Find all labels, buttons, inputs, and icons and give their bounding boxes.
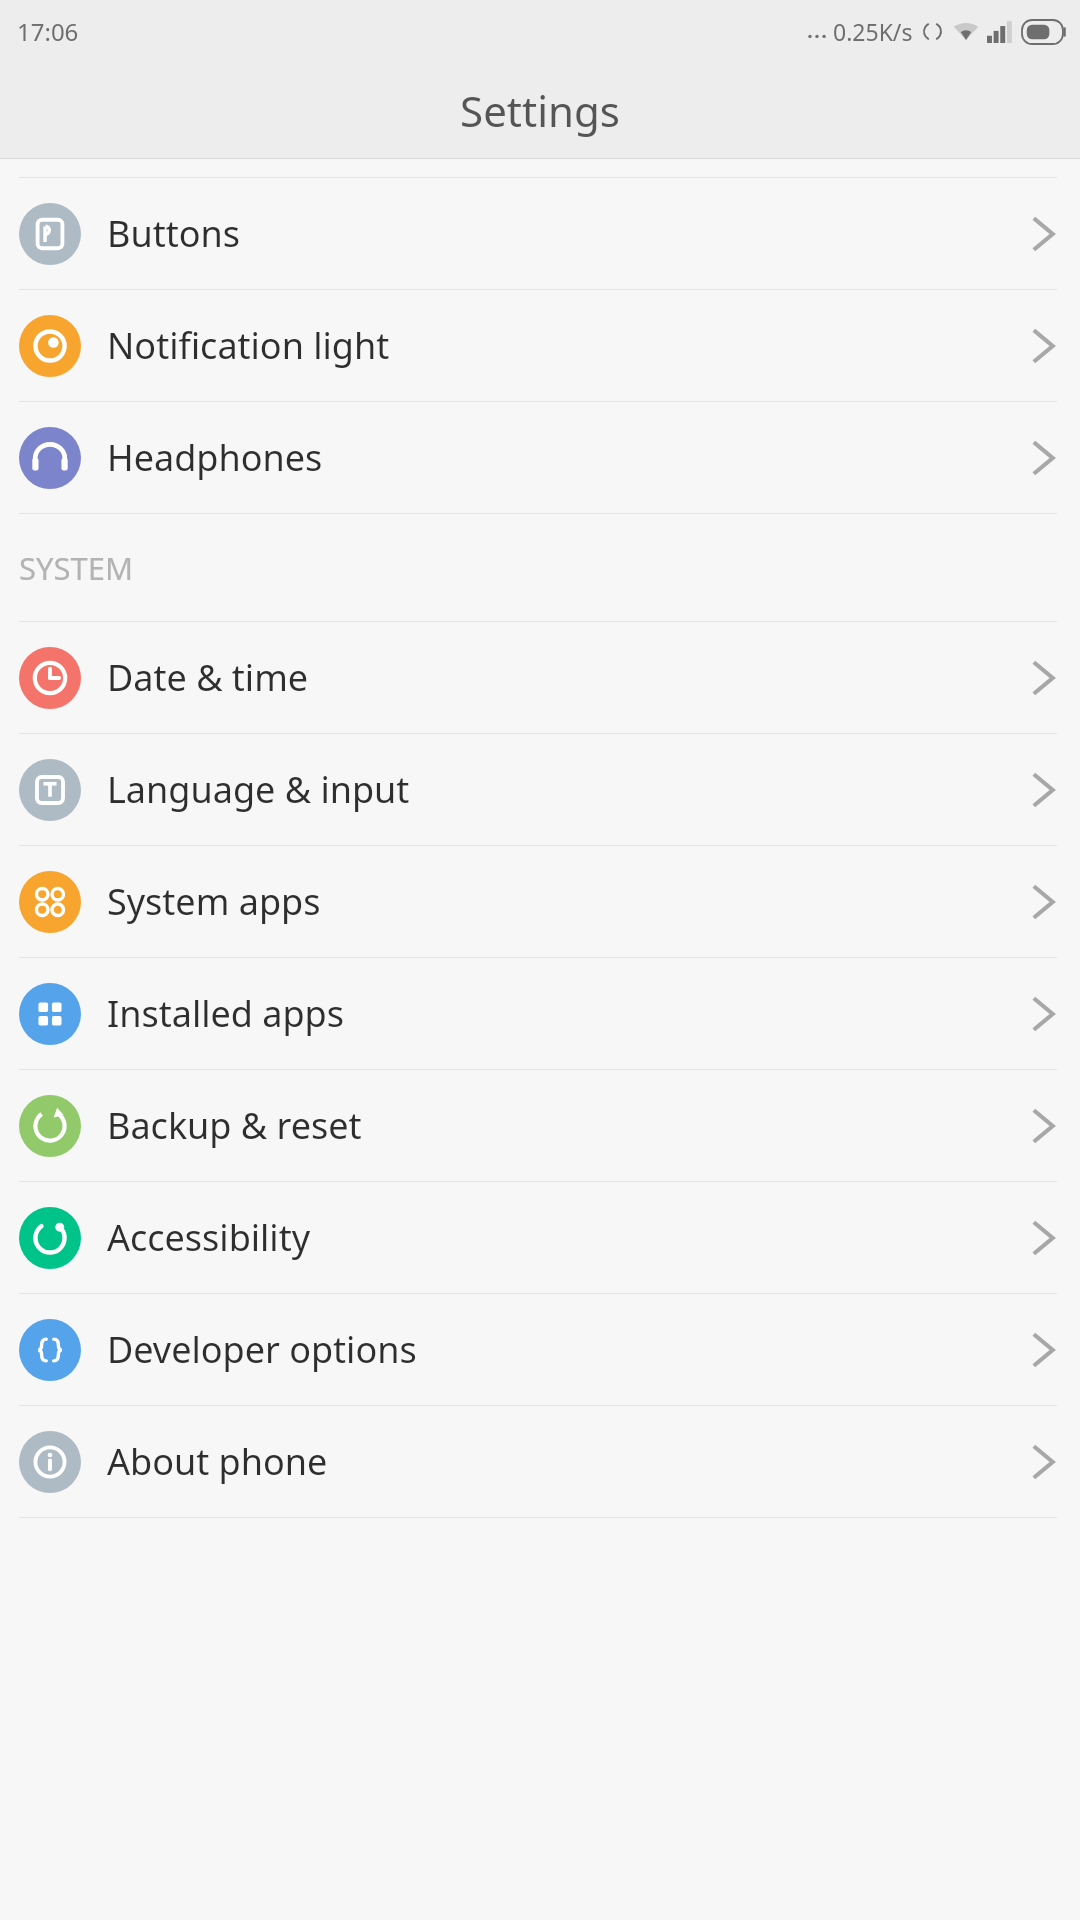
staticText: Headphones [107,433,323,482]
staticText: About phone [107,1437,328,1486]
staticText: System apps [107,877,321,926]
staticText: 0.25K/s [833,16,913,47]
staticText: 17:06 [17,15,79,48]
button[interactable]: Notification light [0,290,1080,401]
staticText: Date & time [107,653,309,702]
staticText: SYSTEM [19,547,134,589]
button[interactable]: Accessibility [0,1182,1080,1293]
button[interactable]: Date & time [0,622,1080,733]
staticText: Backup & reset [107,1101,362,1150]
staticText: Installed apps [107,989,344,1038]
button[interactable]: Buttons [0,178,1080,289]
staticText: Notification light [107,321,390,370]
button[interactable]: Installed apps [0,958,1080,1069]
button[interactable]: Backup & reset [0,1070,1080,1181]
button[interactable]: Language & input [0,734,1080,845]
button[interactable]: About phone [0,1406,1080,1517]
button[interactable]: Headphones [0,402,1080,513]
staticText: Language & input [107,765,410,814]
staticText: Settings [460,82,620,139]
button[interactable]: System apps [0,846,1080,957]
button[interactable]: Developer options [0,1294,1080,1405]
staticText: Accessibility [107,1213,311,1262]
staticText: Buttons [107,209,240,258]
staticText: Developer options [107,1325,417,1374]
